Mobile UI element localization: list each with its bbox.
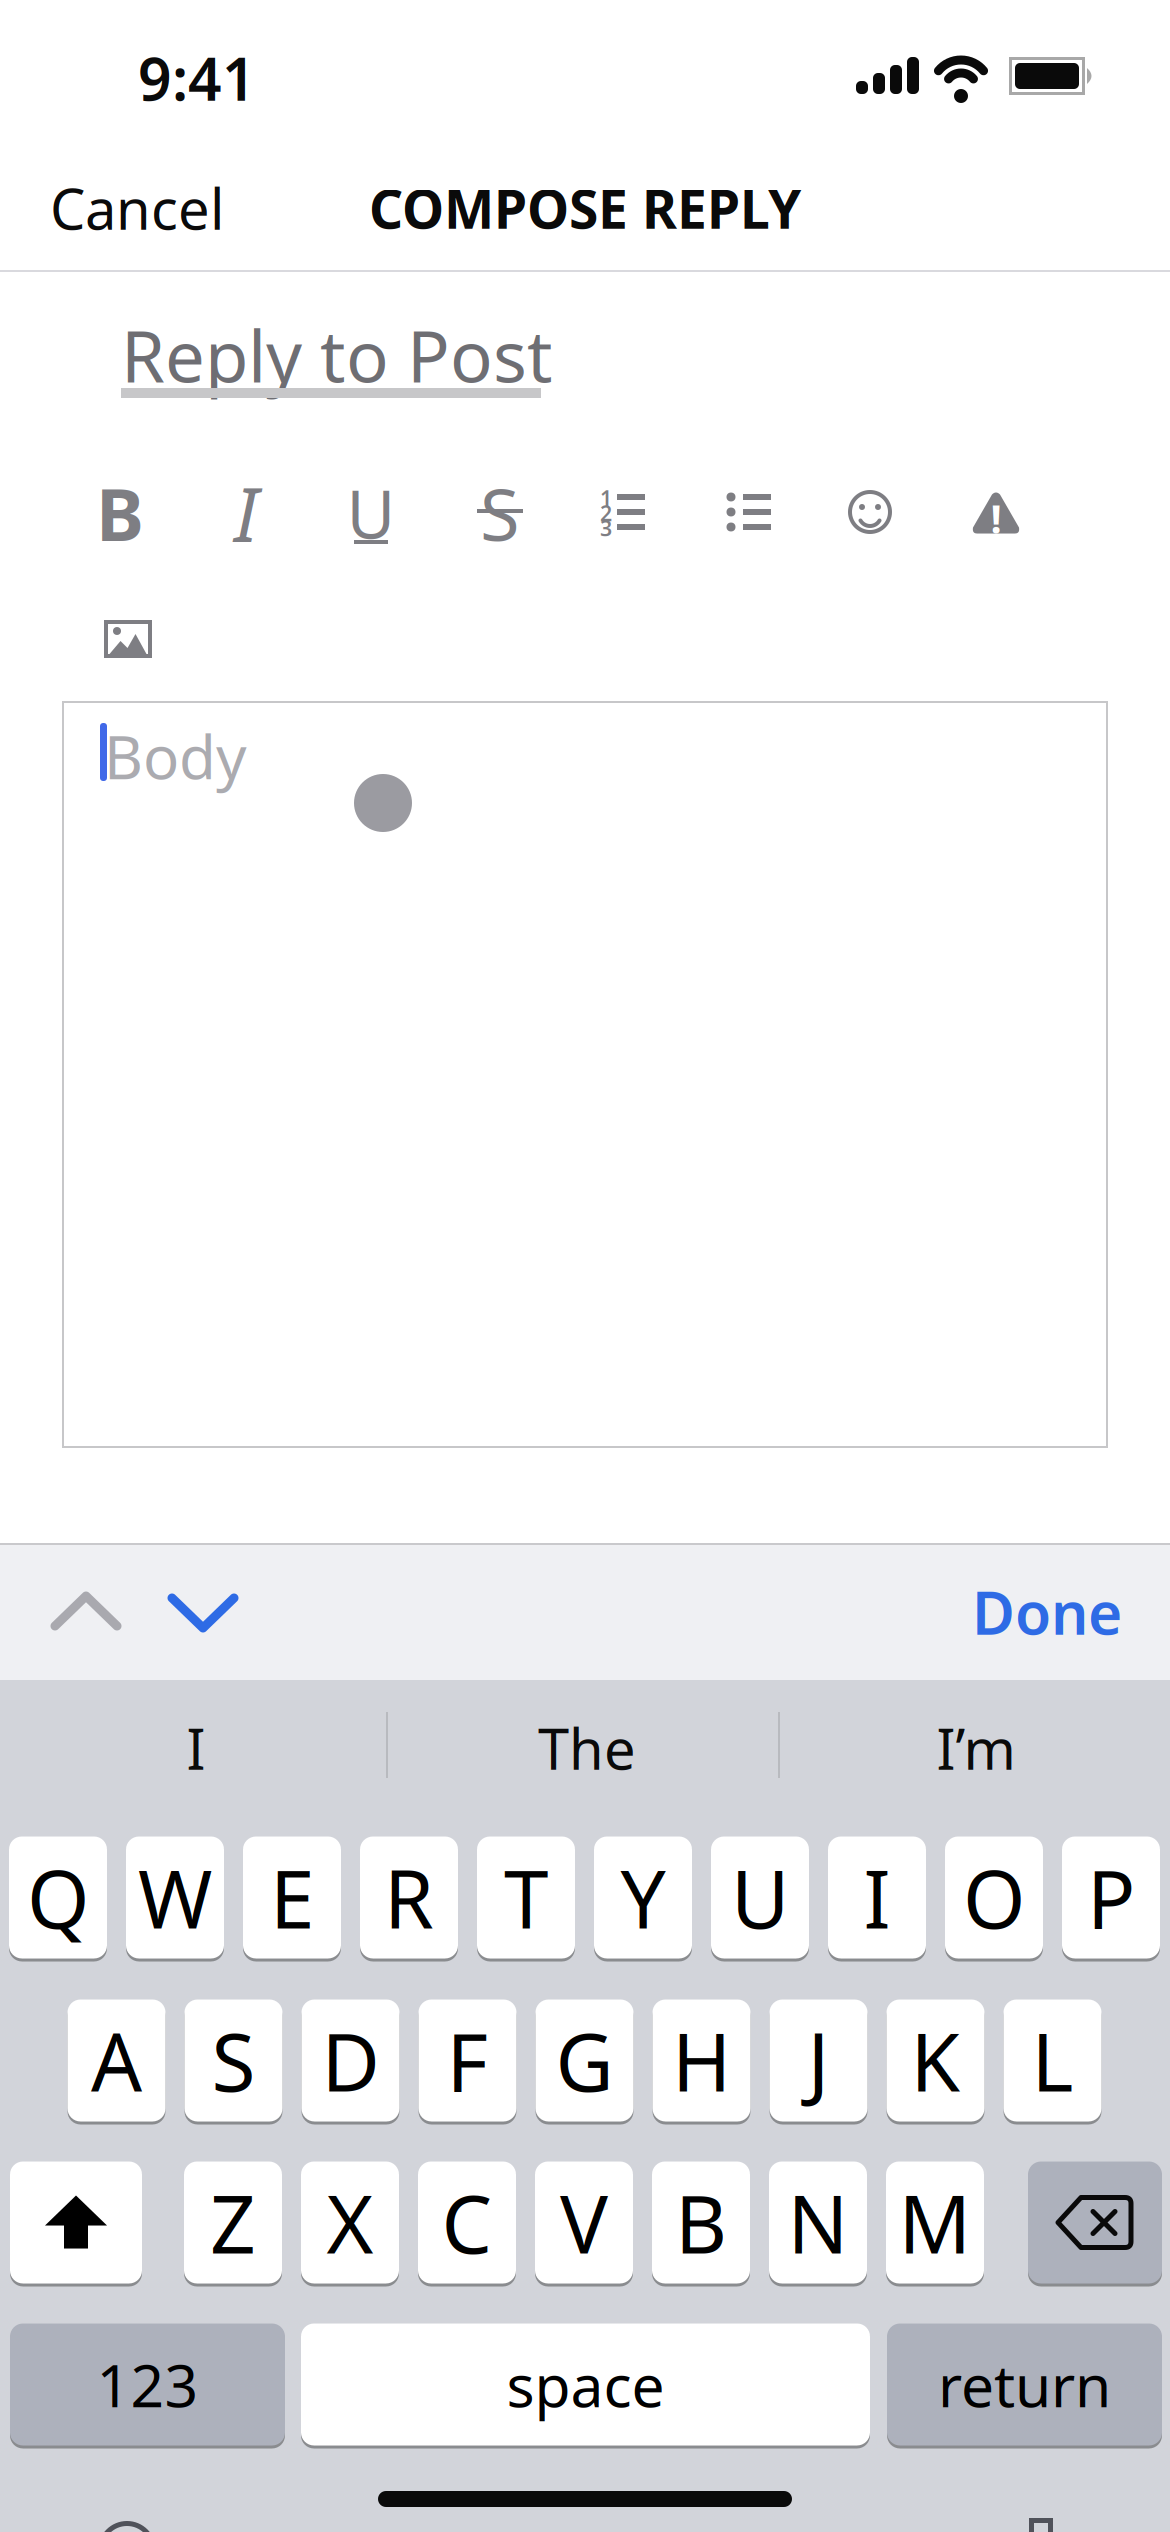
button[interactable]: Underline — [346, 469, 395, 557]
button[interactable]: Numbered list — [599, 491, 645, 535]
button[interactable]: Next field — [172, 1598, 234, 1628]
button[interactable]: E — [243, 1835, 341, 1960]
button[interactable]: Q — [9, 1835, 107, 1960]
staticText: 9:41 — [138, 39, 256, 117]
button[interactable]: Bold — [96, 465, 144, 561]
staticText: K — [910, 2007, 960, 2114]
staticText: COMPOSE REPLY — [369, 173, 801, 243]
staticText: R — [384, 1844, 434, 1951]
staticText: ! — [990, 491, 1001, 544]
button[interactable]: C — [418, 2160, 516, 2285]
staticText: O — [963, 1844, 1025, 1951]
button[interactable]: S — [184, 1998, 282, 2123]
button[interactable]: Insert image — [104, 620, 152, 658]
button[interactable]: V — [535, 2160, 633, 2285]
staticText: The — [538, 1711, 636, 1785]
button[interactable]: T — [477, 1835, 575, 1960]
button[interactable]: I’m — [826, 1703, 1126, 1793]
staticText: V — [560, 2169, 608, 2276]
staticText: N — [787, 2169, 848, 2276]
staticText: I — [186, 1711, 205, 1785]
staticText: H — [672, 2007, 731, 2114]
staticText: U — [346, 469, 395, 557]
button[interactable]: A — [67, 1998, 165, 2123]
staticText: M — [898, 2169, 971, 2276]
staticText: 1 — [600, 484, 612, 512]
button[interactable]: N — [769, 2160, 867, 2285]
staticText: T — [504, 1844, 548, 1951]
staticText: I’m — [936, 1711, 1015, 1785]
staticText: I — [863, 1844, 890, 1951]
staticText: Reply to Post — [121, 308, 553, 402]
staticText: I — [234, 463, 258, 563]
button[interactable]: O — [945, 1835, 1043, 1960]
button[interactable]: I — [828, 1835, 926, 1960]
staticText: Z — [210, 2169, 256, 2276]
staticText: B — [96, 465, 144, 561]
staticText: C — [441, 2169, 492, 2276]
staticText: L — [1031, 2007, 1073, 2114]
staticText: G — [555, 2007, 613, 2114]
button[interactable]: Cancel — [0, 0, 1170, 2532]
staticText: W — [138, 1844, 212, 1951]
staticText: X — [326, 2169, 373, 2276]
staticText: A — [91, 2007, 142, 2114]
staticText: B — [675, 2169, 727, 2276]
button[interactable]: Italic — [234, 463, 258, 563]
staticText: U — [731, 1844, 789, 1951]
button[interactable]: Y — [594, 1835, 692, 1960]
staticText: 123 — [96, 2345, 198, 2423]
button[interactable]: W — [126, 1835, 224, 1960]
staticText: F — [446, 2007, 488, 2114]
button[interactable]: Strikethrough — [477, 465, 523, 561]
staticText: P — [1087, 1844, 1135, 1951]
staticText: D — [321, 2007, 379, 2114]
button[interactable]: X — [301, 2160, 399, 2285]
button[interactable]: Z — [184, 2160, 282, 2285]
staticText: 2 — [600, 499, 612, 527]
staticText: S — [211, 2007, 255, 2114]
staticText: J — [807, 2007, 829, 2114]
button[interactable]: D — [301, 1998, 399, 2123]
button[interactable]: L — [1003, 1998, 1101, 2123]
button[interactable]: Shift — [10, 2160, 142, 2285]
button[interactable]: B — [652, 2160, 750, 2285]
staticText: Y — [620, 1844, 665, 1951]
button[interactable]: K — [886, 1998, 984, 2123]
button[interactable]: 123 — [10, 2322, 285, 2447]
staticText: 3 — [600, 514, 612, 542]
staticText: Cancel — [50, 171, 224, 245]
button[interactable]: P — [1062, 1835, 1160, 1960]
button[interactable]: The — [437, 1703, 737, 1793]
staticText: Q — [27, 1844, 89, 1951]
button[interactable]: H — [652, 1998, 750, 2123]
button[interactable]: Bulleted list — [726, 491, 772, 535]
button[interactable]: I — [46, 1703, 346, 1793]
button[interactable]: Previous field — [55, 1596, 117, 1626]
button[interactable]: R — [360, 1835, 458, 1960]
button[interactable]: F — [418, 1998, 516, 2123]
button[interactable]: Warning — [972, 490, 1020, 534]
button[interactable]: J — [769, 1998, 867, 2123]
staticText: E — [270, 1844, 314, 1951]
button[interactable]: Emoji — [847, 489, 893, 535]
button[interactable]: G — [535, 1998, 633, 2123]
button[interactable]: U — [711, 1835, 809, 1960]
staticText: Body — [104, 716, 247, 796]
button[interactable]: space — [301, 2322, 870, 2447]
button[interactable]: return — [887, 2322, 1162, 2447]
staticText: space — [506, 2345, 664, 2423]
staticText: Done — [972, 1573, 1122, 1651]
staticText: S — [480, 465, 520, 561]
staticText: return — [938, 2345, 1111, 2423]
button[interactable]: Done — [0, 0, 1170, 2532]
button[interactable]: M — [886, 2160, 984, 2285]
button[interactable]: Delete — [1028, 2160, 1162, 2285]
